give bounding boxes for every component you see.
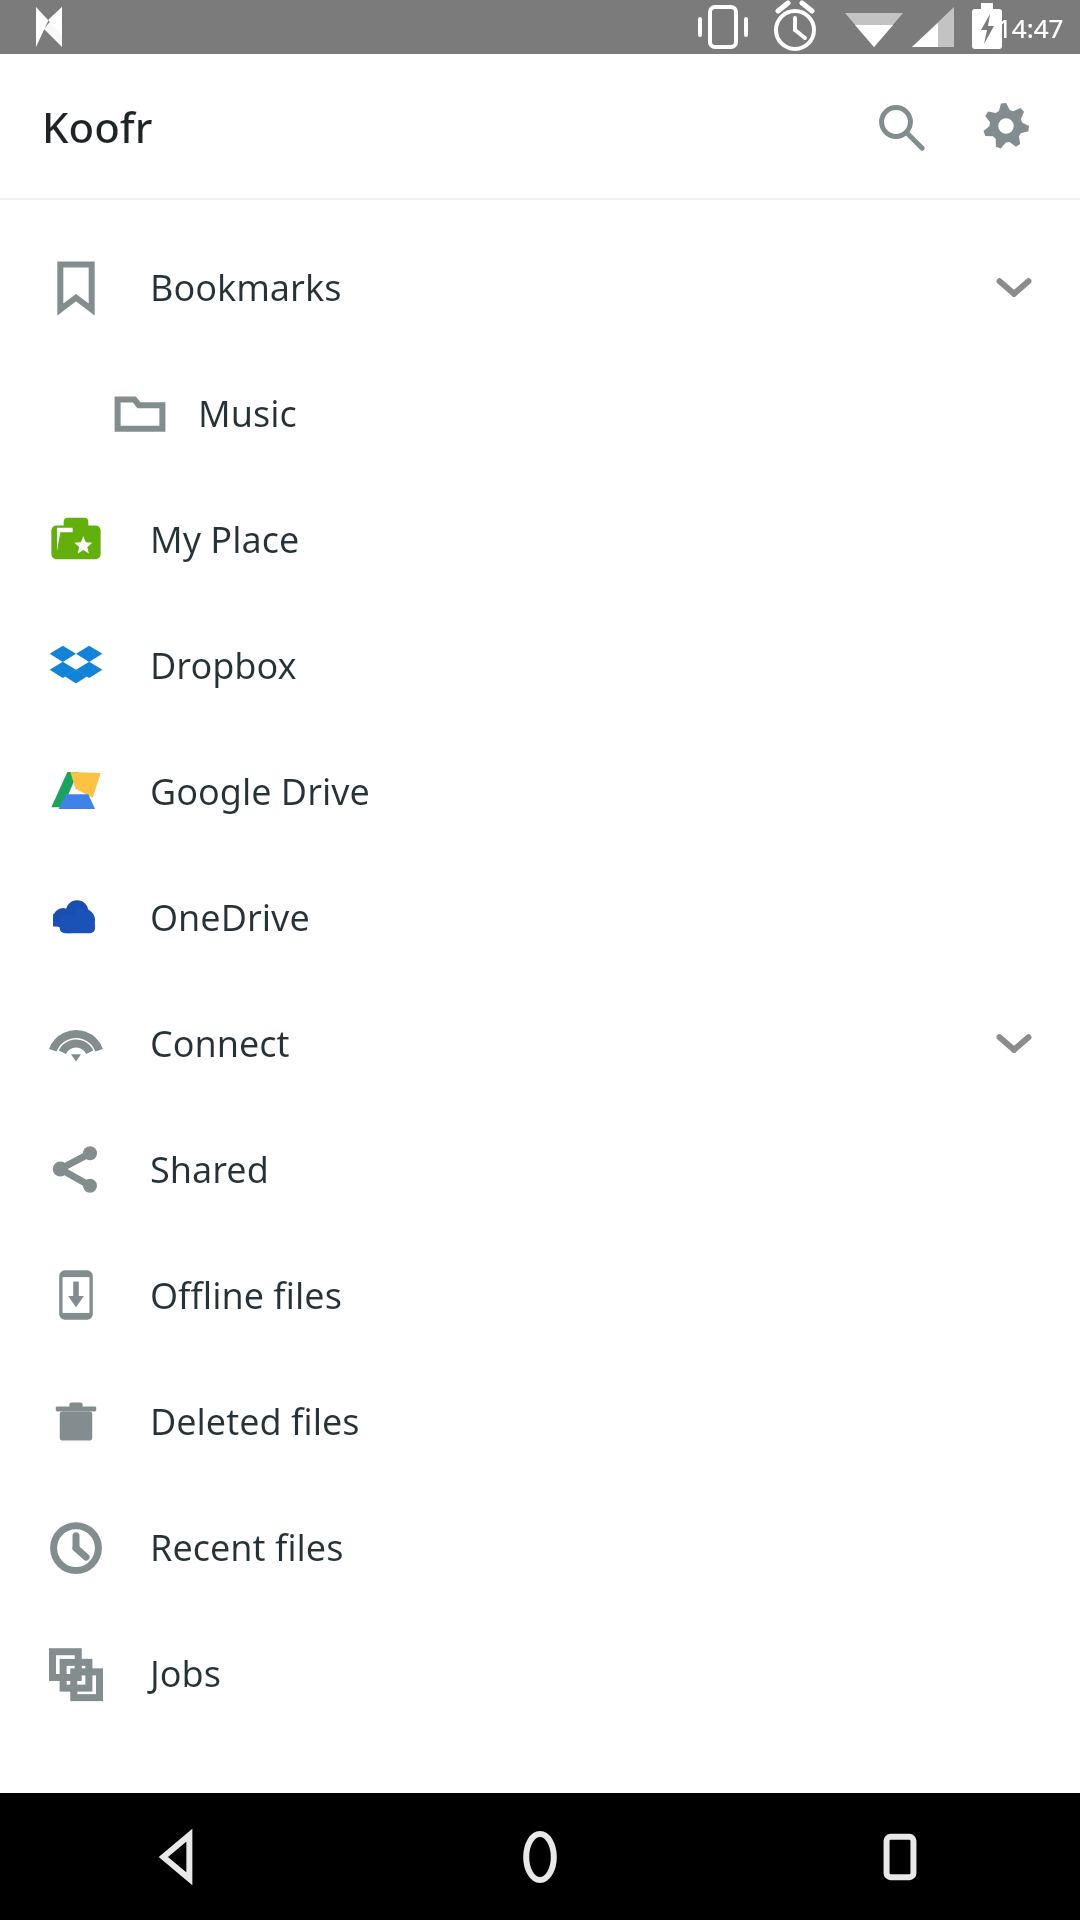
staticText: Music xyxy=(198,389,297,438)
staticText: Bookmarks xyxy=(150,263,342,312)
button[interactable]: Jobs xyxy=(0,1610,1080,1736)
staticText: Connect xyxy=(150,1019,290,1068)
staticText: Deleted files xyxy=(150,1397,360,1446)
button[interactable]: Settings xyxy=(958,78,1054,174)
button[interactable]: Offline files xyxy=(0,1232,1080,1358)
button[interactable]: Google Drive xyxy=(0,728,1080,854)
button[interactable]: Recent files xyxy=(0,1484,1080,1610)
button[interactable]: Dropbox xyxy=(0,602,1080,728)
button[interactable]: Connect xyxy=(0,980,1080,1106)
staticText: Jobs xyxy=(150,1649,221,1698)
staticText: Recent files xyxy=(150,1523,344,1572)
button[interactable]: Music xyxy=(0,350,1080,476)
staticText: Dropbox xyxy=(150,641,297,690)
staticText: OneDrive xyxy=(150,893,310,942)
button[interactable]: Bookmarks xyxy=(0,224,1080,350)
staticText: 14:47 xyxy=(997,10,1064,45)
staticText: Google Drive xyxy=(150,767,370,816)
button[interactable]: OneDrive xyxy=(0,854,1080,980)
staticText: My Place xyxy=(150,515,300,564)
button[interactable]: Home xyxy=(470,1793,610,1920)
staticText: Koofr xyxy=(42,98,153,155)
button[interactable]: Search xyxy=(852,78,948,174)
button[interactable]: Deleted files xyxy=(0,1358,1080,1484)
button[interactable]: My Place xyxy=(0,476,1080,602)
button[interactable]: Recent apps xyxy=(830,1793,970,1920)
button[interactable]: Back xyxy=(110,1793,250,1920)
staticText: Offline files xyxy=(150,1271,342,1320)
staticText: Shared xyxy=(150,1145,269,1194)
button[interactable]: Shared xyxy=(0,1106,1080,1232)
